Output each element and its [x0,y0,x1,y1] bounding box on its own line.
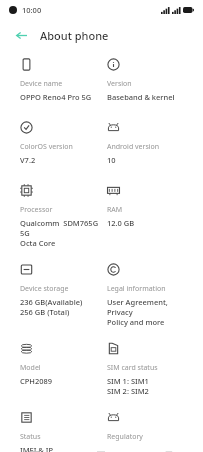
staticText: Device name [20,79,63,89]
staticText: IMEI & IP [20,445,54,452]
button[interactable]: Legal information [107,263,195,327]
staticText: About phone [40,28,109,43]
staticText: Qualcomm SDM765G 5G [20,218,103,238]
staticText: V7.2 [20,155,36,165]
staticText: OPPO Reno4 Pro 5G [20,92,92,102]
staticText: CPH2089 [20,376,53,386]
button[interactable]: Back [11,25,31,45]
button[interactable]: Regulatory [107,411,147,445]
staticText: SIM 1: SIM1 [107,376,149,386]
staticText: Policy and more [107,317,165,327]
staticText: Processor [20,205,53,215]
staticText: SIM card status [107,363,158,373]
staticText: 10 [107,155,116,165]
staticText: 10:00 [22,5,42,15]
staticText: Version [107,79,132,89]
staticText: RAM [107,205,123,215]
button[interactable]: Device storage [20,263,87,317]
staticText: Status [20,432,41,442]
staticText: User Agreement, Privacy [107,297,191,317]
button[interactable]: Model [20,342,57,386]
staticText: Android version [107,142,160,152]
button[interactable]: Processor [20,184,107,248]
staticText: 12.0 GB [107,218,135,228]
staticText: Device storage [20,284,69,294]
staticText: 256 GB (Total) [20,307,70,317]
button[interactable]: ColorOS version [20,121,77,165]
button[interactable]: Version [107,58,179,102]
staticText: 236 GB(Available) [20,297,83,307]
button[interactable]: Device name [20,58,96,102]
staticText: SIM 2: SIM2 [107,386,149,396]
button[interactable]: RAM [107,184,139,228]
staticText: ColorOS version [20,142,73,152]
button[interactable]: SIM card status [107,342,162,396]
button[interactable]: Status [20,411,58,452]
button[interactable]: Android version [107,121,164,165]
staticText: Octa Core [20,238,56,248]
staticText: Baseband & kernel [107,92,175,102]
staticText: Model [20,363,41,373]
staticText: Legal information [107,284,166,294]
staticText: Regulatory [107,432,143,442]
